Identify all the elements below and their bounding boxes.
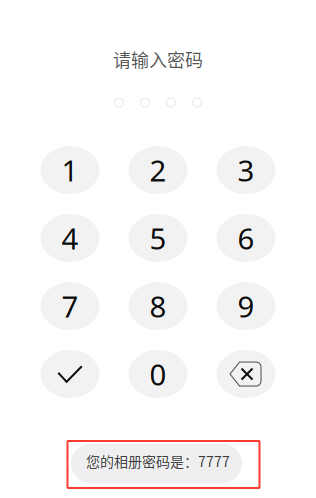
button[interactable]: 4 (40, 214, 99, 262)
staticText: 7 (61, 286, 78, 326)
button[interactable]: 9 (216, 282, 275, 330)
staticText: 2 (149, 150, 166, 190)
button[interactable]: 2 (128, 146, 187, 194)
staticText: 1 (61, 150, 78, 190)
button[interactable]: 7 (40, 282, 99, 330)
button[interactable]: Delete (216, 350, 275, 398)
button[interactable]: 0 (128, 350, 187, 398)
staticText: 5 (149, 218, 166, 258)
button[interactable]: Confirm (40, 350, 99, 398)
staticText: 9 (237, 286, 254, 326)
button[interactable]: 1 (40, 146, 99, 194)
button[interactable]: 3 (216, 146, 275, 194)
button[interactable]: 6 (216, 214, 275, 262)
staticText: 3 (237, 150, 254, 190)
staticText: 8 (149, 286, 166, 326)
staticText: 6 (237, 218, 254, 258)
staticText: 请输入密码 (113, 46, 203, 72)
staticText: 您的相册密码是：7777 (86, 451, 230, 471)
staticText: 0 (149, 354, 166, 394)
button[interactable]: 5 (128, 214, 187, 262)
button[interactable]: 8 (128, 282, 187, 330)
staticText: 4 (61, 218, 78, 258)
